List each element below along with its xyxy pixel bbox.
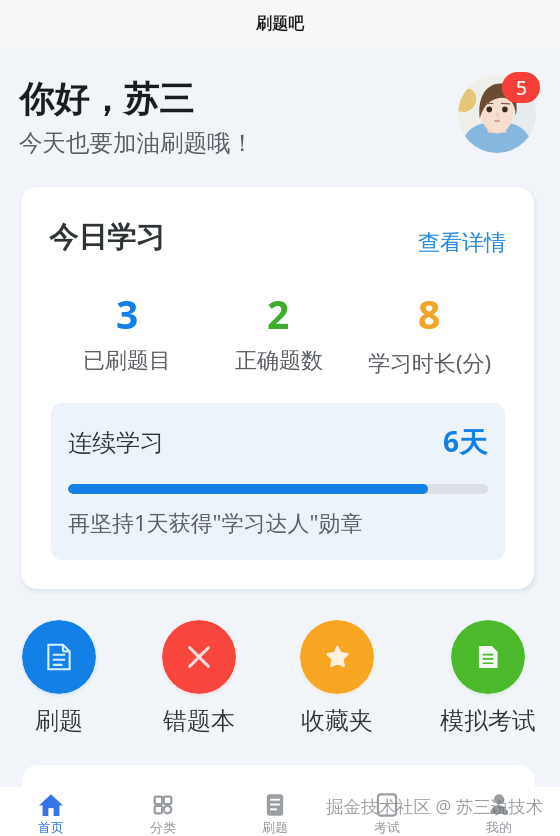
staticText: 今日学习 [49,219,165,256]
staticText: 8 [418,287,441,340]
staticText: 学习时长(分) [368,347,492,377]
staticText: 今天也要加油刷题哦！ [19,128,254,158]
button[interactable]: Profile avatar [458,75,536,153]
button[interactable]: 刷题 [7,620,111,736]
button[interactable]: 考试 [331,787,443,836]
staticText: 你好，苏三 [19,77,194,121]
staticText: 掘金技术社区 @ 苏三说技术 [326,794,544,818]
staticText: 再坚持1天获得"学习达人"勋章 [68,507,363,537]
button[interactable]: 刷题 [219,787,331,836]
staticText: 3 [116,287,139,340]
staticText: 收藏夹 [301,706,373,736]
staticText: 查看详情 [418,229,506,257]
staticText: 刷题 [262,819,288,835]
staticText: 6天 [443,422,488,460]
staticText: 分类 [150,819,176,835]
button[interactable]: 收藏夹 [285,620,389,736]
button[interactable]: 首页 [0,787,107,836]
staticText: 已刷题目 [83,347,171,375]
staticText: 首页 [38,819,64,835]
staticText: 正确题数 [235,347,323,375]
button[interactable]: 错题本 [147,620,251,736]
button[interactable]: 分类 [107,787,219,836]
staticText: 我的 [486,819,512,835]
staticText: 连续学习 [68,428,164,458]
staticText: 5 [516,75,527,101]
staticText: 错题本 [163,706,235,736]
staticText: 2 [267,287,290,340]
button[interactable]: 查看详情 [418,229,506,257]
staticText: 模拟考试 [440,706,536,736]
button[interactable]: 我的 [443,787,555,836]
button[interactable]: 模拟考试 [436,620,540,736]
staticText: 考试 [374,819,400,835]
staticText: 刷题 [35,706,83,736]
staticText: 刷题吧 [256,14,304,34]
